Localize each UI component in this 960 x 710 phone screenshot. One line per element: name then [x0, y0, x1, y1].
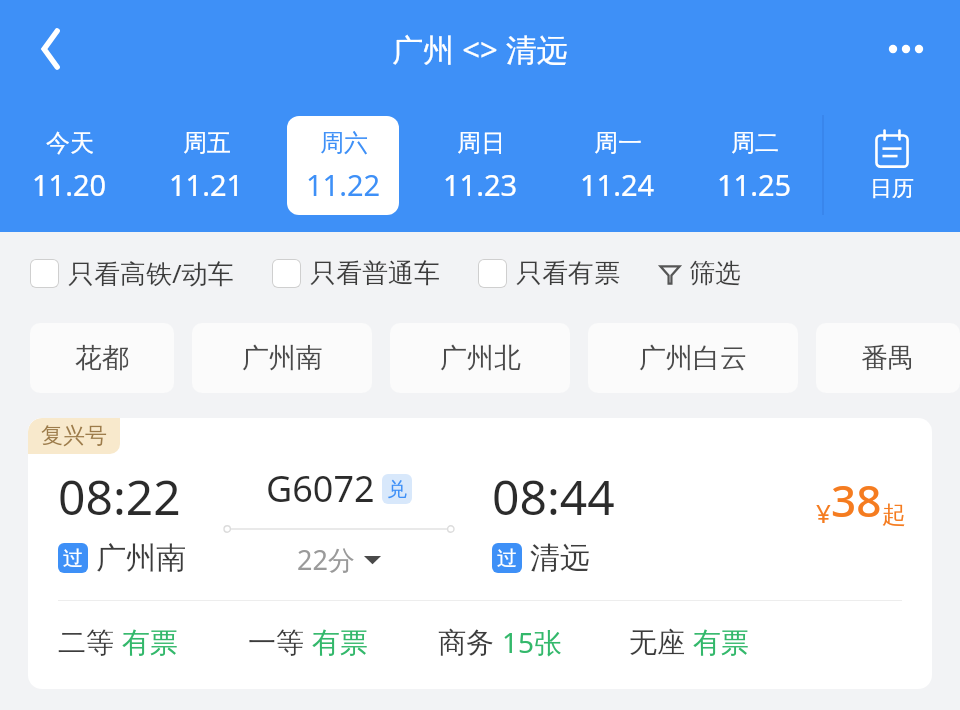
button[interactable]: 只看有票 [478, 251, 620, 296]
staticText: 周六 [320, 128, 368, 158]
staticText: 商务 [438, 625, 494, 660]
button[interactable]: More options [874, 17, 938, 81]
staticText: G6072 [266, 464, 375, 513]
staticText: 清远 [530, 539, 590, 577]
staticText: 11.21 [169, 165, 244, 204]
staticText: 过 [497, 546, 517, 571]
staticText: 有票 [312, 625, 368, 660]
staticText: 周日 [457, 128, 505, 158]
staticText: 广州白云 [639, 341, 747, 375]
button[interactable]: 广州北 [390, 323, 570, 393]
staticText: 11.24 [580, 165, 655, 204]
staticText: 广州南 [242, 341, 323, 375]
button[interactable]: 番禺 [816, 323, 960, 393]
staticText: 有票 [122, 625, 178, 660]
staticText: 一等 [248, 625, 304, 660]
staticText: 广州 <> 清远 [392, 28, 568, 70]
staticText: 周五 [183, 128, 231, 158]
staticText: 有票 [693, 625, 749, 660]
staticText: 只看普通车 [310, 257, 440, 290]
staticText: 筛选 [689, 257, 741, 290]
button[interactable]: 今天 [13, 116, 125, 215]
staticText: 只看有票 [516, 257, 620, 290]
button[interactable]: 周日 [424, 116, 536, 215]
button[interactable]: Calendar [824, 98, 960, 232]
staticText: 11.23 [443, 165, 518, 204]
staticText: 22分 [297, 541, 355, 578]
staticText: 15张 [502, 623, 563, 661]
staticText: 日历 [870, 175, 914, 203]
staticText: 11.22 [306, 165, 381, 204]
button[interactable]: 周二 [698, 116, 810, 215]
staticText: 38 [831, 470, 882, 530]
staticText: 广州南 [96, 539, 186, 577]
button[interactable]: 周五 [150, 116, 262, 215]
staticText: 周一 [594, 128, 642, 158]
button[interactable]: 花都 [30, 323, 174, 393]
staticText: ¥ [816, 495, 831, 530]
staticText: 过 [63, 546, 83, 571]
button[interactable]: 周一 [561, 116, 673, 215]
staticText: 起 [882, 500, 906, 530]
button[interactable]: 广州白云 [588, 323, 798, 393]
staticText: 今天 [46, 128, 94, 158]
staticText: 广州北 [440, 341, 521, 375]
staticText: 08:22 [58, 464, 181, 529]
staticText: 周二 [731, 128, 779, 158]
staticText: 11.20 [32, 165, 107, 204]
staticText: 复兴号 [41, 422, 107, 450]
staticText: 兑 [387, 477, 407, 502]
staticText: 只看高铁/动车 [68, 255, 234, 291]
button[interactable]: 复兴号 [28, 418, 932, 689]
button[interactable]: 只看普通车 [272, 251, 440, 296]
staticText: 11.25 [717, 165, 792, 204]
staticText: 无座 [629, 625, 685, 660]
staticText: 二等 [58, 625, 114, 660]
button[interactable]: Back [18, 15, 86, 83]
staticText: 08:44 [492, 464, 615, 529]
staticText: 番禺 [861, 341, 915, 375]
button[interactable]: 周六 [287, 116, 399, 215]
button[interactable]: 筛选 [654, 251, 745, 296]
button[interactable]: 广州南 [192, 323, 372, 393]
staticText: 花都 [75, 341, 129, 375]
button[interactable]: 只看高铁/动车 [30, 249, 234, 297]
